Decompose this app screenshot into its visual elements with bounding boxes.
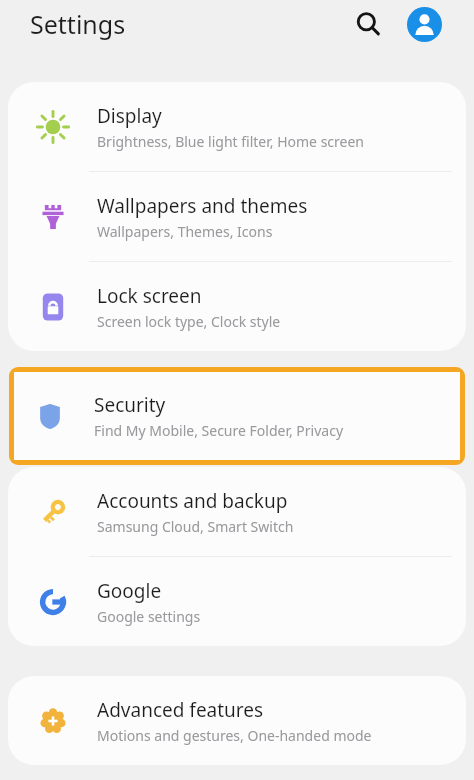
staticText: Screen lock type, Clock style — [97, 312, 281, 331]
staticText: Find My Mobile, Secure Folder, Privacy — [94, 421, 344, 440]
button[interactable]: Account — [404, 4, 444, 44]
button[interactable]: Display — [8, 82, 466, 171]
staticText: Google — [97, 578, 162, 604]
button[interactable]: Accounts and backup — [8, 467, 466, 556]
staticText: Wallpapers, Themes, Icons — [97, 222, 273, 241]
staticText: Google settings — [97, 607, 201, 626]
staticText: Lock screen — [97, 283, 202, 309]
button[interactable]: Wallpapers and themes — [8, 172, 466, 261]
staticText: Accounts and backup — [97, 488, 288, 514]
staticText: Settings — [30, 7, 126, 41]
staticText: Brightness, Blue light filter, Home scre… — [97, 132, 365, 151]
button[interactable]: Security — [14, 372, 460, 460]
button[interactable]: Lock screen — [8, 262, 466, 351]
staticText: Wallpapers and themes — [97, 193, 308, 219]
button[interactable]: Search — [348, 4, 388, 44]
staticText: Display — [97, 103, 162, 129]
staticText: Motions and gestures, One-handed mode — [97, 726, 372, 745]
staticText: Samsung Cloud, Smart Switch — [97, 517, 294, 536]
button[interactable]: Google — [8, 557, 466, 646]
staticText: Advanced features — [97, 697, 264, 723]
staticText: Security — [94, 392, 166, 418]
button[interactable]: Advanced features — [8, 676, 466, 765]
